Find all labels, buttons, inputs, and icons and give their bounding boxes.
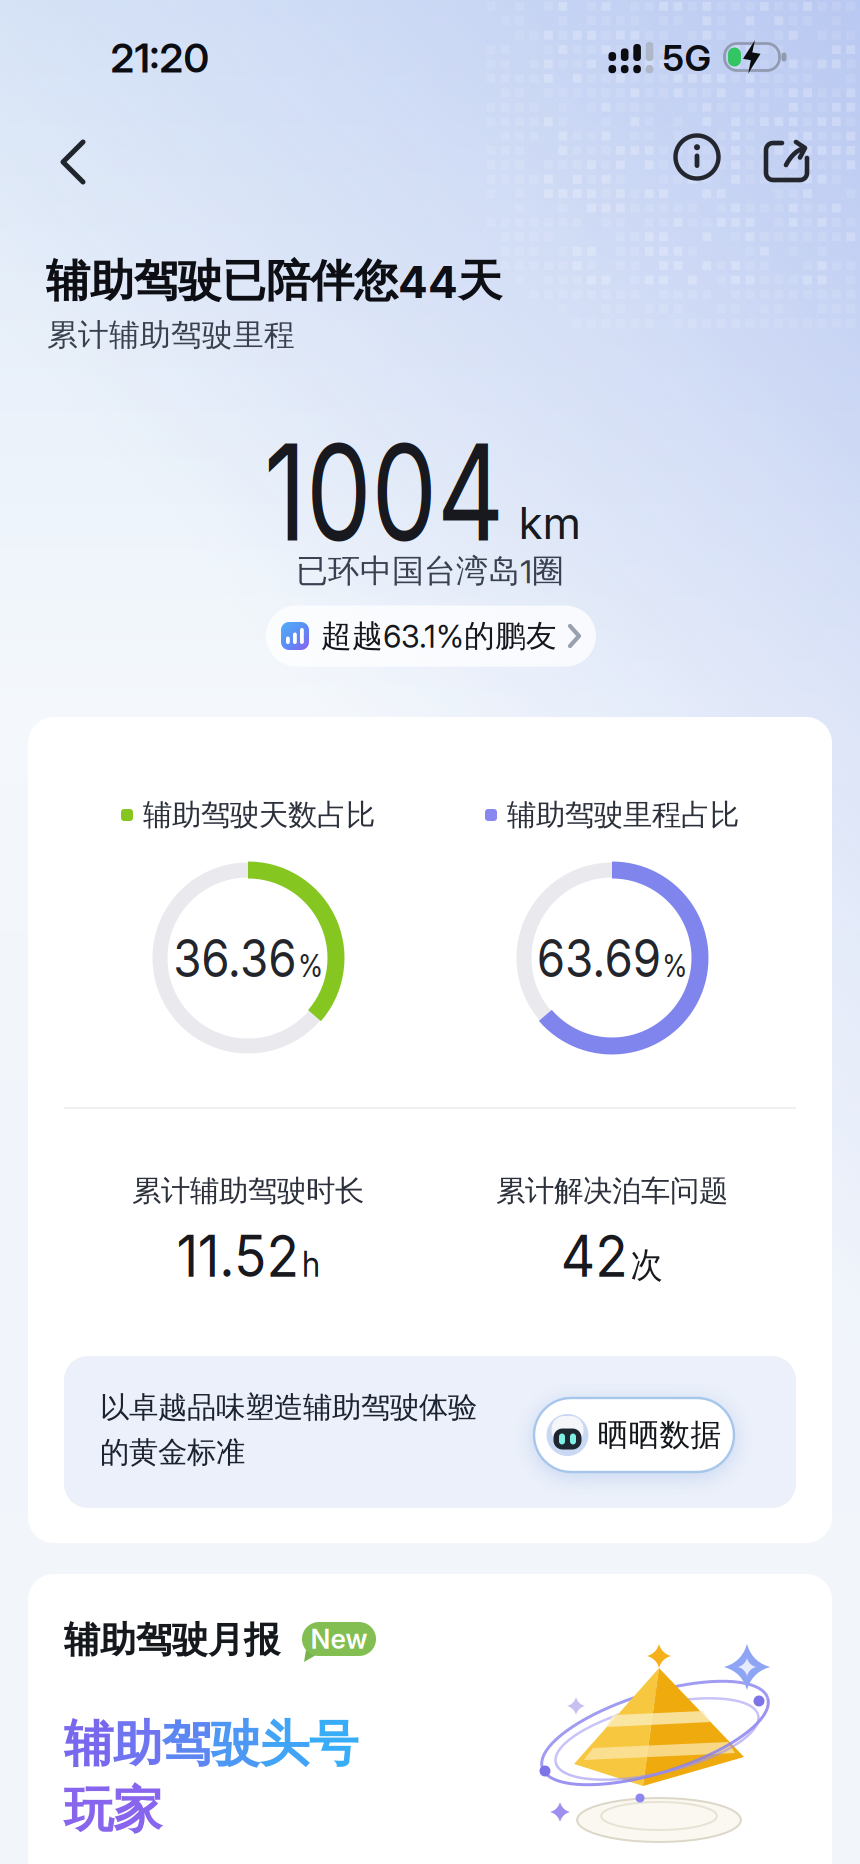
staticText: 助: [113, 1714, 162, 1774]
staticText: 5G: [662, 37, 711, 79]
staticText: 驾: [162, 1714, 211, 1774]
staticText: 超越63.1%的鹏友: [321, 617, 557, 655]
staticText: 的黄金标准: [100, 1434, 245, 1470]
button[interactable]: Info: [667, 127, 727, 187]
button[interactable]: Back: [46, 126, 100, 198]
staticText: 36.36: [163, 927, 303, 989]
staticText: 辅助驾驶已陪伴您44天: [46, 254, 502, 308]
staticText: h: [306, 1244, 325, 1285]
staticText: 11.52: [171, 1222, 303, 1290]
staticText: 头: [260, 1714, 309, 1774]
staticText: 辅助驾驶月报: [64, 1618, 280, 1662]
staticText: 21:20: [110, 34, 209, 82]
staticText: 辅: [64, 1714, 113, 1774]
button[interactable]: 晒晒数据: [534, 1398, 734, 1472]
staticText: 累计辅助驾驶里程: [47, 316, 295, 354]
staticText: 已环中国台湾岛1圈: [296, 551, 564, 591]
staticText: New: [310, 1623, 367, 1655]
staticText: km: [518, 497, 581, 549]
staticText: 累计解决泊车问题: [496, 1173, 728, 1209]
button[interactable]: 超越63.1%的鹏友: [266, 605, 596, 666]
button[interactable]: Share: [759, 128, 817, 190]
staticText: 号: [309, 1714, 358, 1774]
staticText: 42: [557, 1222, 629, 1290]
staticText: 辅助驾驶里程占比: [507, 797, 739, 833]
staticText: 次: [632, 1244, 667, 1287]
staticText: 辅助驾驶天数占比: [143, 797, 375, 833]
staticText: %: [305, 948, 333, 984]
staticText: 63.69: [526, 927, 667, 989]
staticText: 玩家: [64, 1780, 162, 1840]
staticText: 驶: [211, 1714, 260, 1774]
staticText: 以卓越品味塑造辅助驾驶体验: [100, 1389, 477, 1425]
button[interactable]: 辅助驾驶月报: [28, 1574, 832, 1864]
staticText: 累计辅助驾驶时长: [132, 1173, 364, 1209]
staticText: %: [669, 948, 697, 984]
staticText: 晒晒数据: [597, 1416, 721, 1454]
staticText: 1004: [230, 413, 538, 571]
